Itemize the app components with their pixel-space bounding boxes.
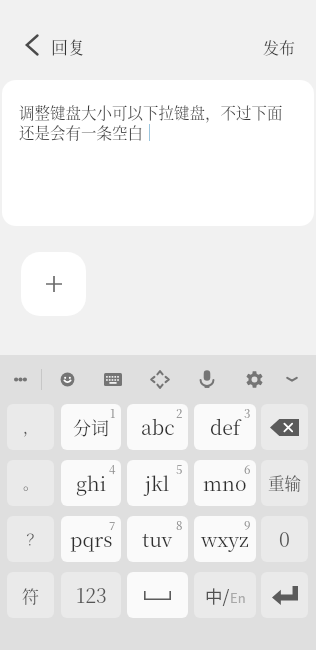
staticText: 1 bbox=[110, 405, 116, 422]
staticText: 。 bbox=[23, 472, 39, 494]
button[interactable]: Voice input bbox=[192, 364, 222, 394]
button[interactable]: Emoji bbox=[52, 364, 82, 394]
button[interactable]: Hide keyboard bbox=[277, 364, 307, 394]
button[interactable]: More options bbox=[5, 364, 35, 394]
button[interactable]: def bbox=[194, 404, 256, 450]
button[interactable]: ， bbox=[7, 404, 54, 450]
staticText: 分词 bbox=[73, 414, 109, 440]
button[interactable]: mno bbox=[194, 460, 256, 506]
button[interactable]: 回复 bbox=[18, 27, 93, 63]
staticText: pqrs bbox=[70, 525, 113, 553]
staticText: jkl bbox=[145, 469, 170, 497]
staticText: wxyz bbox=[201, 525, 249, 553]
button[interactable]: Settings bbox=[239, 364, 269, 394]
staticText: En bbox=[230, 588, 246, 607]
button[interactable]: Space bbox=[127, 572, 188, 618]
staticText: 回复 bbox=[51, 34, 85, 58]
staticText: 符 bbox=[22, 583, 39, 607]
button[interactable]: 中/ bbox=[194, 572, 256, 618]
staticText: 调整键盘大小可以下拉键盘，不过下面 还是会有一条空白 bbox=[19, 101, 309, 144]
staticText: ghi bbox=[76, 469, 107, 497]
button[interactable]: 重输 bbox=[261, 460, 308, 506]
staticText: tuv bbox=[142, 525, 173, 553]
staticText: 7 bbox=[109, 517, 116, 534]
button[interactable]: 0 bbox=[261, 516, 308, 562]
staticText: 123 bbox=[76, 581, 107, 609]
button[interactable]: 。 bbox=[7, 460, 54, 506]
staticText: 重输 bbox=[268, 471, 301, 495]
staticText: ， bbox=[23, 416, 39, 438]
staticText: 0 bbox=[279, 525, 290, 553]
button[interactable]: 符 bbox=[7, 572, 54, 618]
button[interactable]: 发布 bbox=[251, 28, 308, 67]
staticText: 8 bbox=[176, 517, 183, 534]
button[interactable]: wxyz bbox=[194, 516, 256, 562]
button[interactable]: tuv bbox=[127, 516, 188, 562]
staticText: ？ bbox=[23, 528, 39, 550]
button[interactable]: Resize keyboard bbox=[145, 364, 175, 394]
staticText: 中/ bbox=[205, 583, 230, 608]
button[interactable]: abc bbox=[127, 404, 188, 450]
button[interactable]: Delete bbox=[261, 404, 308, 450]
button[interactable]: jkl bbox=[127, 460, 188, 506]
staticText: 6 bbox=[244, 461, 251, 478]
button[interactable]: Switch keyboard bbox=[98, 364, 128, 394]
staticText: mno bbox=[203, 469, 247, 497]
button[interactable]: Add attachment bbox=[21, 252, 86, 316]
staticText: abc bbox=[141, 413, 175, 441]
button[interactable]: ghi bbox=[61, 460, 121, 506]
staticText: 4 bbox=[109, 461, 116, 478]
staticText: def bbox=[210, 413, 241, 441]
staticText: 发布 bbox=[263, 36, 296, 59]
staticText: 3 bbox=[244, 405, 251, 422]
button[interactable]: 调整键盘大小可以下拉键盘，不过下面 还是会有一条空白 bbox=[2, 80, 314, 226]
button[interactable]: pqrs bbox=[61, 516, 121, 562]
button[interactable]: ？ bbox=[7, 516, 54, 562]
staticText: 5 bbox=[176, 461, 183, 478]
button[interactable]: 123 bbox=[61, 572, 121, 618]
staticText: 9 bbox=[244, 517, 251, 534]
button[interactable]: Enter bbox=[261, 572, 308, 618]
button[interactable]: 分词 bbox=[61, 404, 121, 450]
staticText: 2 bbox=[176, 405, 183, 422]
